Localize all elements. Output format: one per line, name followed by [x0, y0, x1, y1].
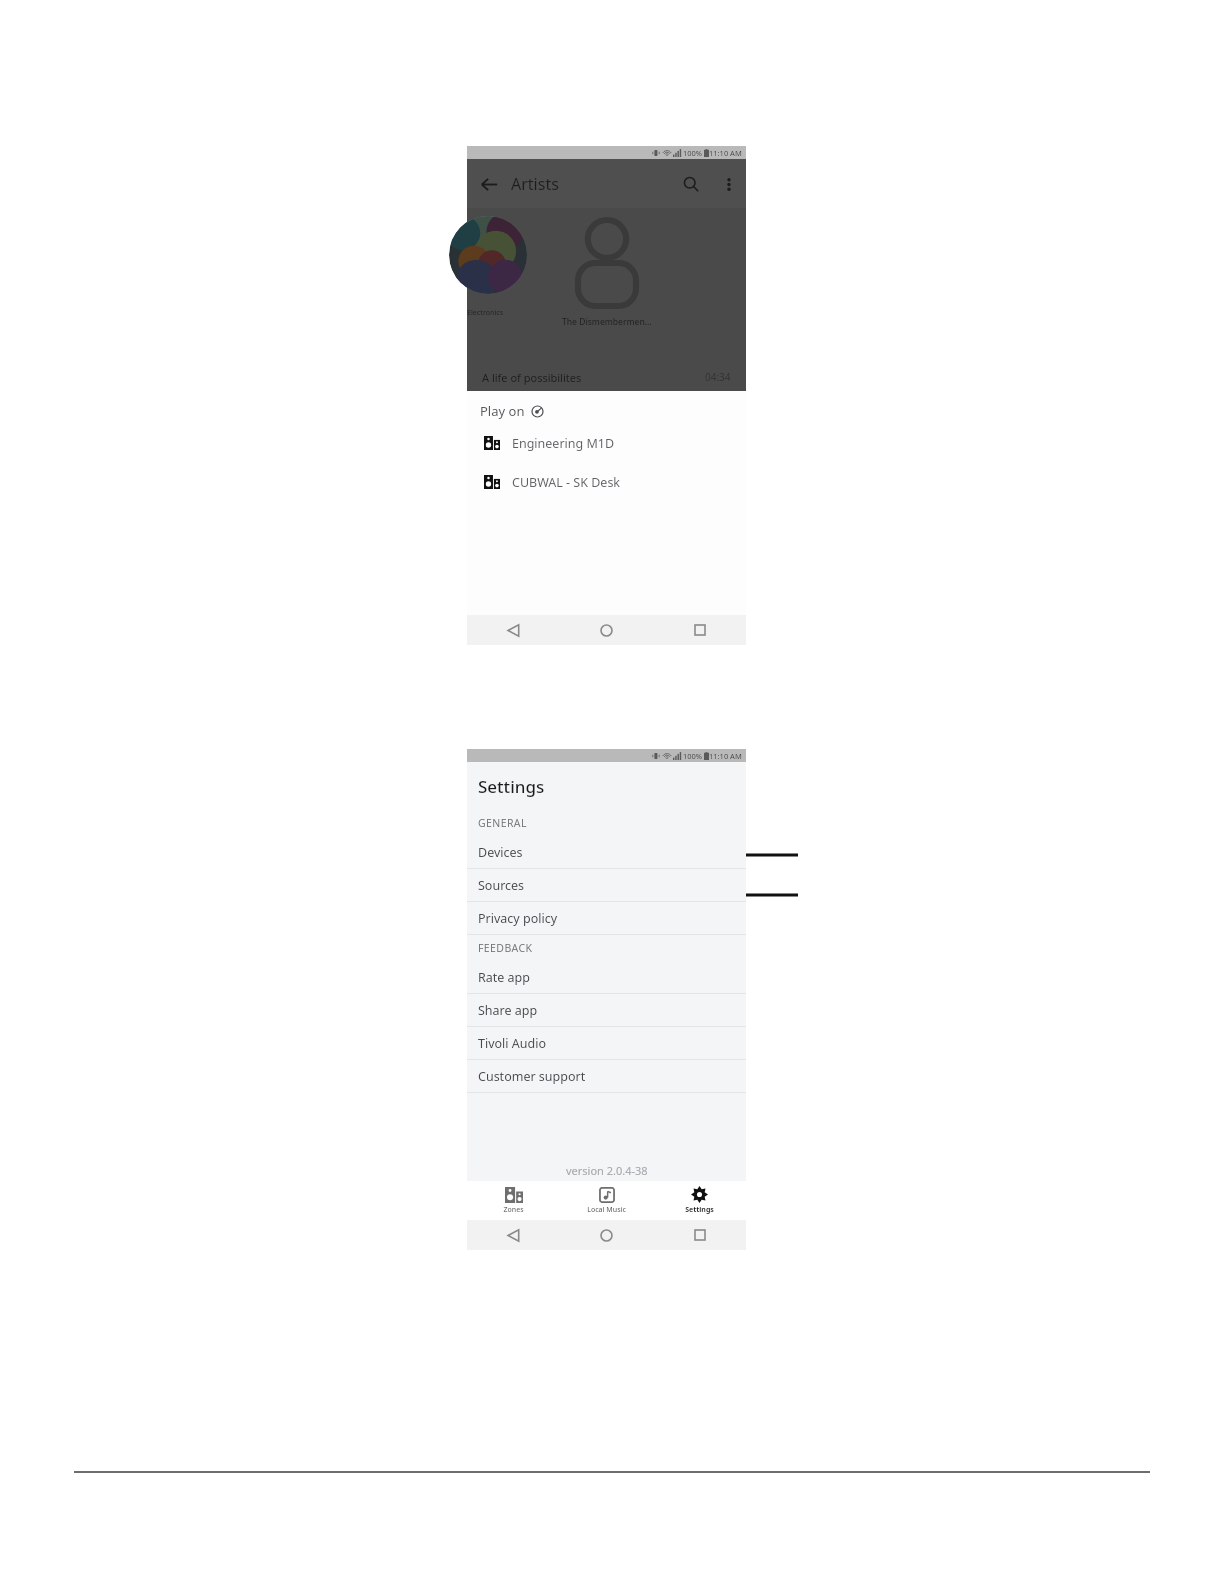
- button[interactable]: Recents: [653, 615, 746, 645]
- staticText: 11:10 AM: [709, 148, 742, 158]
- staticText: A life of possibilites: [482, 370, 582, 385]
- button[interactable]: Recents: [653, 1220, 746, 1250]
- button[interactable]: Zones: [467, 1181, 560, 1220]
- staticText: 100%: [683, 148, 703, 158]
- button[interactable]: Back: [467, 615, 560, 645]
- button[interactable]: CUBWAL - SK Desk: [467, 471, 746, 493]
- button[interactable]: Sources: [467, 869, 746, 901]
- button[interactable]: Share app: [467, 994, 746, 1026]
- button[interactable]: The Dismembermen…: [552, 210, 662, 328]
- staticText: Customer support: [478, 1068, 586, 1085]
- staticText: 11:10 AM: [709, 751, 742, 761]
- staticText: Tivoli Audio: [478, 1035, 546, 1052]
- button[interactable]: Back: [467, 162, 511, 206]
- button[interactable]: Settings: [653, 1181, 746, 1220]
- staticText: Electronics: [467, 308, 504, 318]
- button[interactable]: Privacy policy: [467, 902, 746, 934]
- staticText: Rate app: [478, 969, 530, 986]
- staticText: 04:34: [705, 370, 731, 384]
- staticText: Privacy policy: [478, 910, 558, 927]
- staticText: Play on: [480, 402, 525, 420]
- button[interactable]: Local Music: [560, 1181, 653, 1220]
- button[interactable]: A life of possibilites: [467, 363, 746, 391]
- staticText: 100%: [683, 751, 703, 761]
- staticText: version 2.0.4-38: [566, 1163, 648, 1178]
- button[interactable]: More options: [712, 167, 746, 201]
- staticText: GENERAL: [478, 816, 527, 830]
- staticText: Local Music: [587, 1205, 626, 1215]
- staticText: Zones: [503, 1205, 524, 1215]
- button[interactable]: Devices: [467, 836, 746, 868]
- staticText: Share app: [478, 1002, 538, 1019]
- staticText: Settings: [478, 775, 545, 798]
- button[interactable]: Engineering M1D: [467, 432, 746, 454]
- staticText: Devices: [478, 844, 523, 861]
- staticText: Settings: [685, 1205, 714, 1215]
- staticText: Sources: [478, 877, 525, 894]
- staticText: Artists: [511, 173, 559, 195]
- staticText: The Dismembermen…: [562, 316, 652, 328]
- button[interactable]: Search: [670, 163, 712, 205]
- button[interactable]: Rate app: [467, 961, 746, 993]
- button[interactable]: Home: [560, 615, 653, 645]
- staticText: CUBWAL - SK Desk: [512, 474, 621, 491]
- button[interactable]: Home: [560, 1220, 653, 1250]
- button[interactable]: Back: [467, 1220, 560, 1250]
- button[interactable]: Tivoli Audio: [467, 1027, 746, 1059]
- staticText: Engineering M1D: [512, 435, 615, 452]
- button[interactable]: Customer support: [467, 1060, 746, 1092]
- staticText: FEEDBACK: [478, 941, 533, 955]
- button[interactable]: [449, 216, 527, 294]
